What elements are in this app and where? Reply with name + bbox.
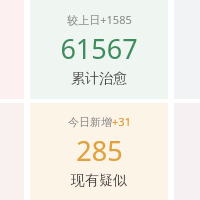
staticText: 61567 [60,30,138,67]
staticText: 较上日+1585 [67,12,132,27]
staticText: 今日新增+31 [68,114,131,129]
staticText: 累计治愈 [71,70,127,88]
button[interactable]: 今日新增+31 [30,103,168,200]
staticText: 285 [76,132,123,169]
button[interactable]: 较上日+1585 [30,0,168,99]
staticText: 现有疑似 [71,172,127,190]
